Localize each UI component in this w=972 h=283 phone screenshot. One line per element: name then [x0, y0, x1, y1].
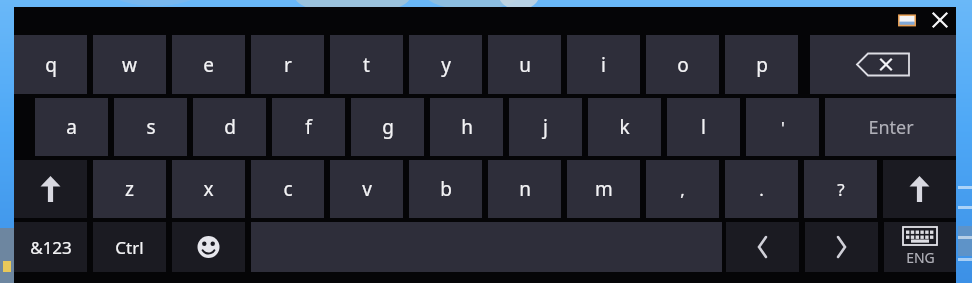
- staticText: ': [781, 116, 785, 139]
- button[interactable]: k: [588, 98, 661, 156]
- staticText: l: [701, 114, 706, 140]
- button[interactable]: s: [114, 98, 187, 156]
- button[interactable]: Emoji: [172, 222, 245, 272]
- button[interactable]: m: [567, 160, 640, 218]
- button[interactable]: f: [272, 98, 345, 156]
- button[interactable]: Enter: [825, 98, 956, 156]
- staticText: s: [146, 114, 156, 140]
- button[interactable]: b: [409, 160, 482, 218]
- staticText: t: [363, 52, 370, 78]
- staticText: z: [125, 176, 134, 202]
- staticText: j: [543, 114, 548, 140]
- button[interactable]: q: [14, 35, 87, 94]
- staticText: o: [677, 52, 689, 78]
- button[interactable]: p: [725, 35, 798, 94]
- button[interactable]: i: [567, 35, 640, 94]
- button[interactable]: Close: [928, 10, 952, 30]
- staticText: h: [461, 114, 473, 140]
- staticText: ENG: [906, 248, 935, 267]
- staticText: .: [759, 178, 764, 201]
- staticText: ?: [837, 178, 845, 201]
- button[interactable]: x: [172, 160, 245, 218]
- button[interactable]: n: [488, 160, 561, 218]
- button[interactable]: Dock keyboard: [893, 10, 921, 30]
- staticText: ,: [680, 178, 685, 201]
- staticText: g: [382, 114, 394, 140]
- button[interactable]: u: [488, 35, 561, 94]
- button[interactable]: l: [667, 98, 740, 156]
- button[interactable]: w: [93, 35, 166, 94]
- staticText: y: [441, 52, 451, 78]
- staticText: n: [519, 176, 531, 202]
- button[interactable]: t: [330, 35, 403, 94]
- button[interactable]: o: [646, 35, 719, 94]
- button[interactable]: j: [509, 98, 582, 156]
- button[interactable]: ,: [646, 160, 719, 218]
- button[interactable]: Move cursor left: [726, 222, 799, 272]
- staticText: x: [203, 176, 214, 202]
- button[interactable]: Backspace: [810, 35, 956, 94]
- button[interactable]: Ctrl: [93, 222, 166, 272]
- button[interactable]: h: [430, 98, 503, 156]
- staticText: q: [45, 52, 57, 78]
- staticText: w: [122, 52, 137, 78]
- staticText: Enter: [868, 115, 914, 140]
- button[interactable]: ': [746, 98, 819, 156]
- staticText: d: [224, 114, 236, 140]
- staticText: Ctrl: [115, 236, 144, 259]
- staticText: &123: [30, 236, 72, 259]
- button[interactable]: ?: [804, 160, 877, 218]
- staticText: u: [519, 52, 531, 78]
- staticText: f: [305, 114, 312, 140]
- button[interactable]: e: [172, 35, 245, 94]
- button[interactable]: a: [35, 98, 108, 156]
- button[interactable]: g: [351, 98, 424, 156]
- staticText: c: [283, 176, 293, 202]
- button[interactable]: v: [330, 160, 403, 218]
- button[interactable]: c: [251, 160, 324, 218]
- staticText: e: [203, 52, 214, 78]
- button[interactable]: Shift: [14, 160, 87, 218]
- button[interactable]: d: [193, 98, 266, 156]
- button[interactable]: Move cursor right: [805, 222, 878, 272]
- staticText: p: [756, 52, 768, 78]
- staticText: k: [619, 114, 630, 140]
- button[interactable]: Shift: [883, 160, 956, 218]
- staticText: b: [440, 176, 452, 202]
- button[interactable]: Change language, English: [884, 222, 956, 272]
- button[interactable]: r: [251, 35, 324, 94]
- staticText: i: [601, 52, 606, 78]
- staticText: r: [284, 52, 292, 78]
- button[interactable]: z: [93, 160, 166, 218]
- staticText: m: [595, 176, 613, 202]
- staticText: v: [362, 176, 372, 202]
- button[interactable]: .: [725, 160, 798, 218]
- button[interactable]: &123: [14, 222, 87, 272]
- button[interactable]: y: [409, 35, 482, 94]
- staticText: a: [66, 114, 77, 140]
